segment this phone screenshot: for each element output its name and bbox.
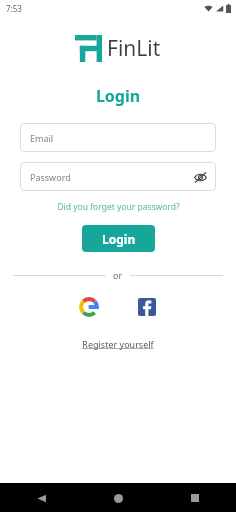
button[interactable]: Show password xyxy=(192,169,208,185)
staticText: Email xyxy=(30,132,54,144)
staticText: Login xyxy=(0,85,236,107)
button[interactable]: Did you forget your password? xyxy=(0,201,236,213)
button[interactable]: Email xyxy=(20,123,216,152)
button[interactable]: Login xyxy=(82,225,155,252)
button[interactable]: Sign in with Google xyxy=(76,294,102,320)
button[interactable]: Home xyxy=(107,487,129,509)
staticText: Register yourself xyxy=(82,338,154,350)
staticText: FinLit xyxy=(107,34,161,63)
button[interactable]: Recent apps xyxy=(184,487,206,509)
staticText: Password xyxy=(30,171,71,183)
staticText: Login xyxy=(102,231,136,247)
staticText: 7:53 xyxy=(6,3,22,14)
staticText: Did you forget your password? xyxy=(57,201,180,213)
button[interactable]: Password xyxy=(20,162,216,191)
button[interactable]: Sign in with Facebook xyxy=(134,294,160,320)
staticText: or xyxy=(113,269,123,281)
button[interactable]: Register yourself xyxy=(0,338,236,350)
button[interactable]: Back xyxy=(30,487,52,509)
